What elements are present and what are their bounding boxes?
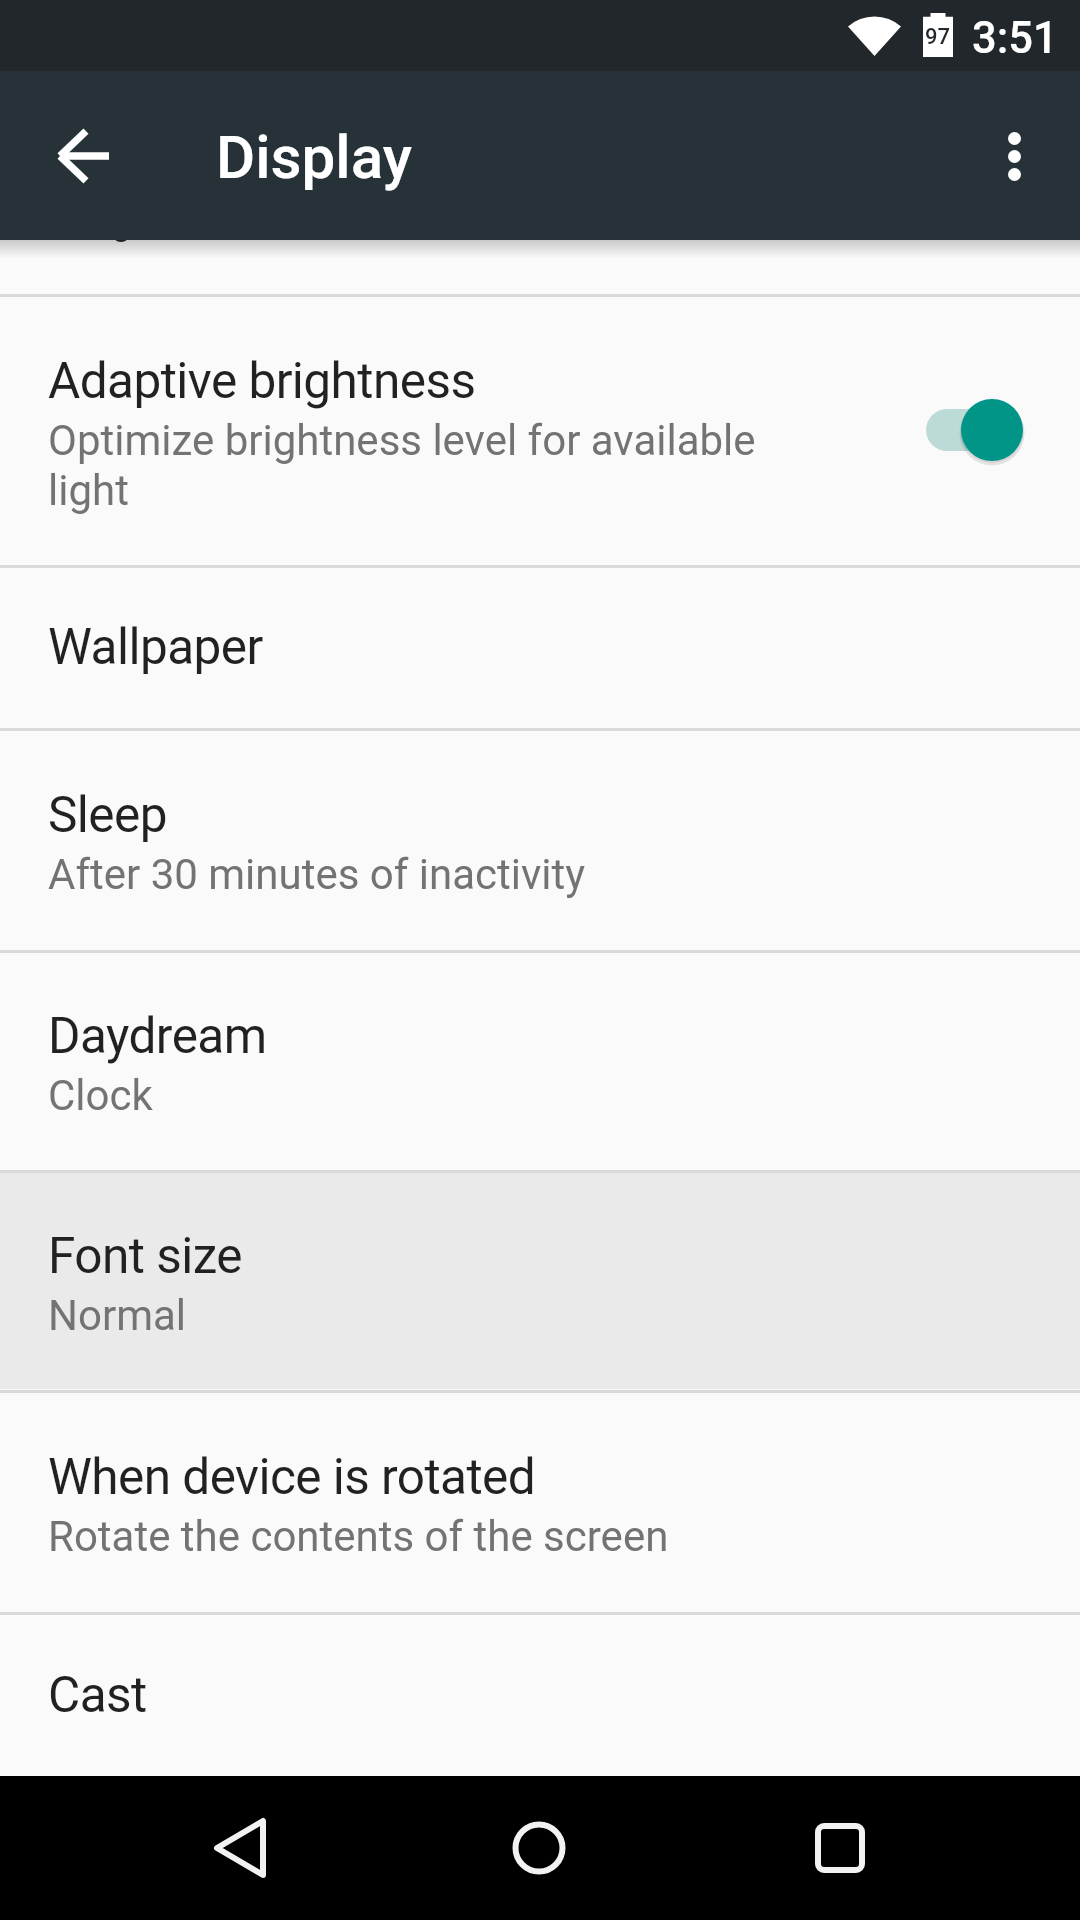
button[interactable]: Wallpaper <box>0 567 1080 727</box>
staticText: Sleep <box>48 786 167 844</box>
staticText: Cast <box>48 1666 147 1724</box>
staticText: Daydream <box>48 1007 267 1065</box>
button[interactable]: More options <box>966 108 1062 204</box>
staticText: Font size <box>48 1227 242 1285</box>
staticText: Clock <box>48 1071 153 1120</box>
staticText: Normal <box>48 1291 187 1340</box>
staticText: Adaptive brightness <box>48 352 476 410</box>
button[interactable]: When device is rotated <box>0 1392 1080 1611</box>
button[interactable]: Adaptive brightness switch <box>912 382 1036 478</box>
button[interactable] <box>0 240 1080 294</box>
button[interactable]: Adaptive brightness <box>0 296 1080 565</box>
button[interactable]: Navigate up <box>36 108 132 204</box>
staticText: After 30 minutes of inactivity <box>48 850 586 899</box>
staticText: Wallpaper <box>48 618 263 676</box>
staticText: Rotate the contents of the screen <box>48 1512 669 1561</box>
staticText: 97 <box>925 24 951 50</box>
staticText: When device is rotated <box>48 1448 536 1506</box>
button[interactable]: Cast <box>0 1614 1080 1776</box>
staticText: 3:51 <box>972 13 1058 64</box>
button[interactable]: Back <box>150 1776 330 1920</box>
button[interactable]: Daydream <box>0 952 1080 1169</box>
button[interactable]: Font size <box>0 1172 1080 1389</box>
staticText: Optimize brightness level for available … <box>48 416 756 515</box>
staticText: Display <box>216 122 412 192</box>
button[interactable]: Home <box>449 1776 629 1920</box>
button[interactable]: Sleep <box>0 730 1080 949</box>
button[interactable]: Recent apps <box>750 1776 930 1920</box>
